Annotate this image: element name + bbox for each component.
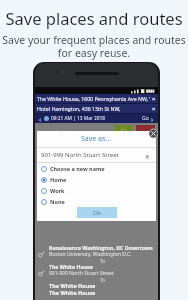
staticText: ×: [145, 151, 150, 160]
staticText: Choose a new name: [50, 165, 105, 172]
staticText: None: [50, 198, 65, 205]
button[interactable]: None: [37, 196, 156, 207]
button[interactable]: Clear: [143, 151, 152, 160]
staticText: The White House: [49, 263, 93, 270]
button[interactable]: Previous: [37, 115, 44, 122]
staticText: Save as...: [81, 134, 112, 144]
button[interactable]: Next: [149, 115, 156, 122]
staticText: Ok: [93, 209, 101, 217]
staticText: Save your frequent places and routes for…: [2, 33, 186, 60]
staticText: To: [100, 277, 105, 282]
button[interactable]: Home: [37, 174, 156, 185]
button[interactable]: Start: [114, 125, 133, 140]
staticText: Hotel Hamington, 436 13th St NW, Washing…: [37, 105, 152, 112]
staticText: 09:21 AM | 13 Mar 2018: [51, 115, 106, 122]
button[interactable]: Renaissance Washington, DC Downtown Hote…: [38, 244, 155, 263]
button[interactable]: Stop: [136, 125, 155, 140]
staticText: Go: [142, 115, 149, 122]
staticText: Home: [50, 176, 67, 183]
staticText: Recent Travel: [38, 129, 70, 136]
staticText: Renaissance Washington, DC Downtown Hote…: [49, 244, 155, 251]
staticText: 901-999 North Stuart Street: [41, 151, 143, 159]
staticText: 901-999 North Stuart Street: [49, 270, 114, 277]
button[interactable]: Close: [149, 129, 158, 138]
button[interactable]: Work: [37, 185, 156, 196]
staticText: Boston University, Washington D.C. Progr…: [49, 251, 155, 258]
staticText: ×: [152, 105, 156, 113]
button[interactable]: The White House: [38, 263, 155, 282]
staticText: Save places and routes: [5, 7, 183, 29]
staticText: The White House, 1600 Pennsylvania Ave N…: [37, 95, 152, 102]
staticText: Work: [50, 187, 65, 194]
button[interactable]: Choose a new name: [37, 163, 156, 174]
staticText: ›: [151, 115, 154, 122]
button[interactable]: Ok: [77, 207, 117, 218]
staticText: ×: [152, 95, 156, 103]
button[interactable]: Hotel Hamington, 436 13th St NW, Washing…: [35, 104, 158, 113]
staticText: ‹: [39, 115, 42, 122]
staticText: The White House: [49, 282, 96, 289]
button[interactable]: The White House, 1600 Pennsylvania Ave N…: [35, 94, 158, 103]
staticText: To: [100, 258, 105, 263]
staticText: The White House: [49, 289, 96, 296]
